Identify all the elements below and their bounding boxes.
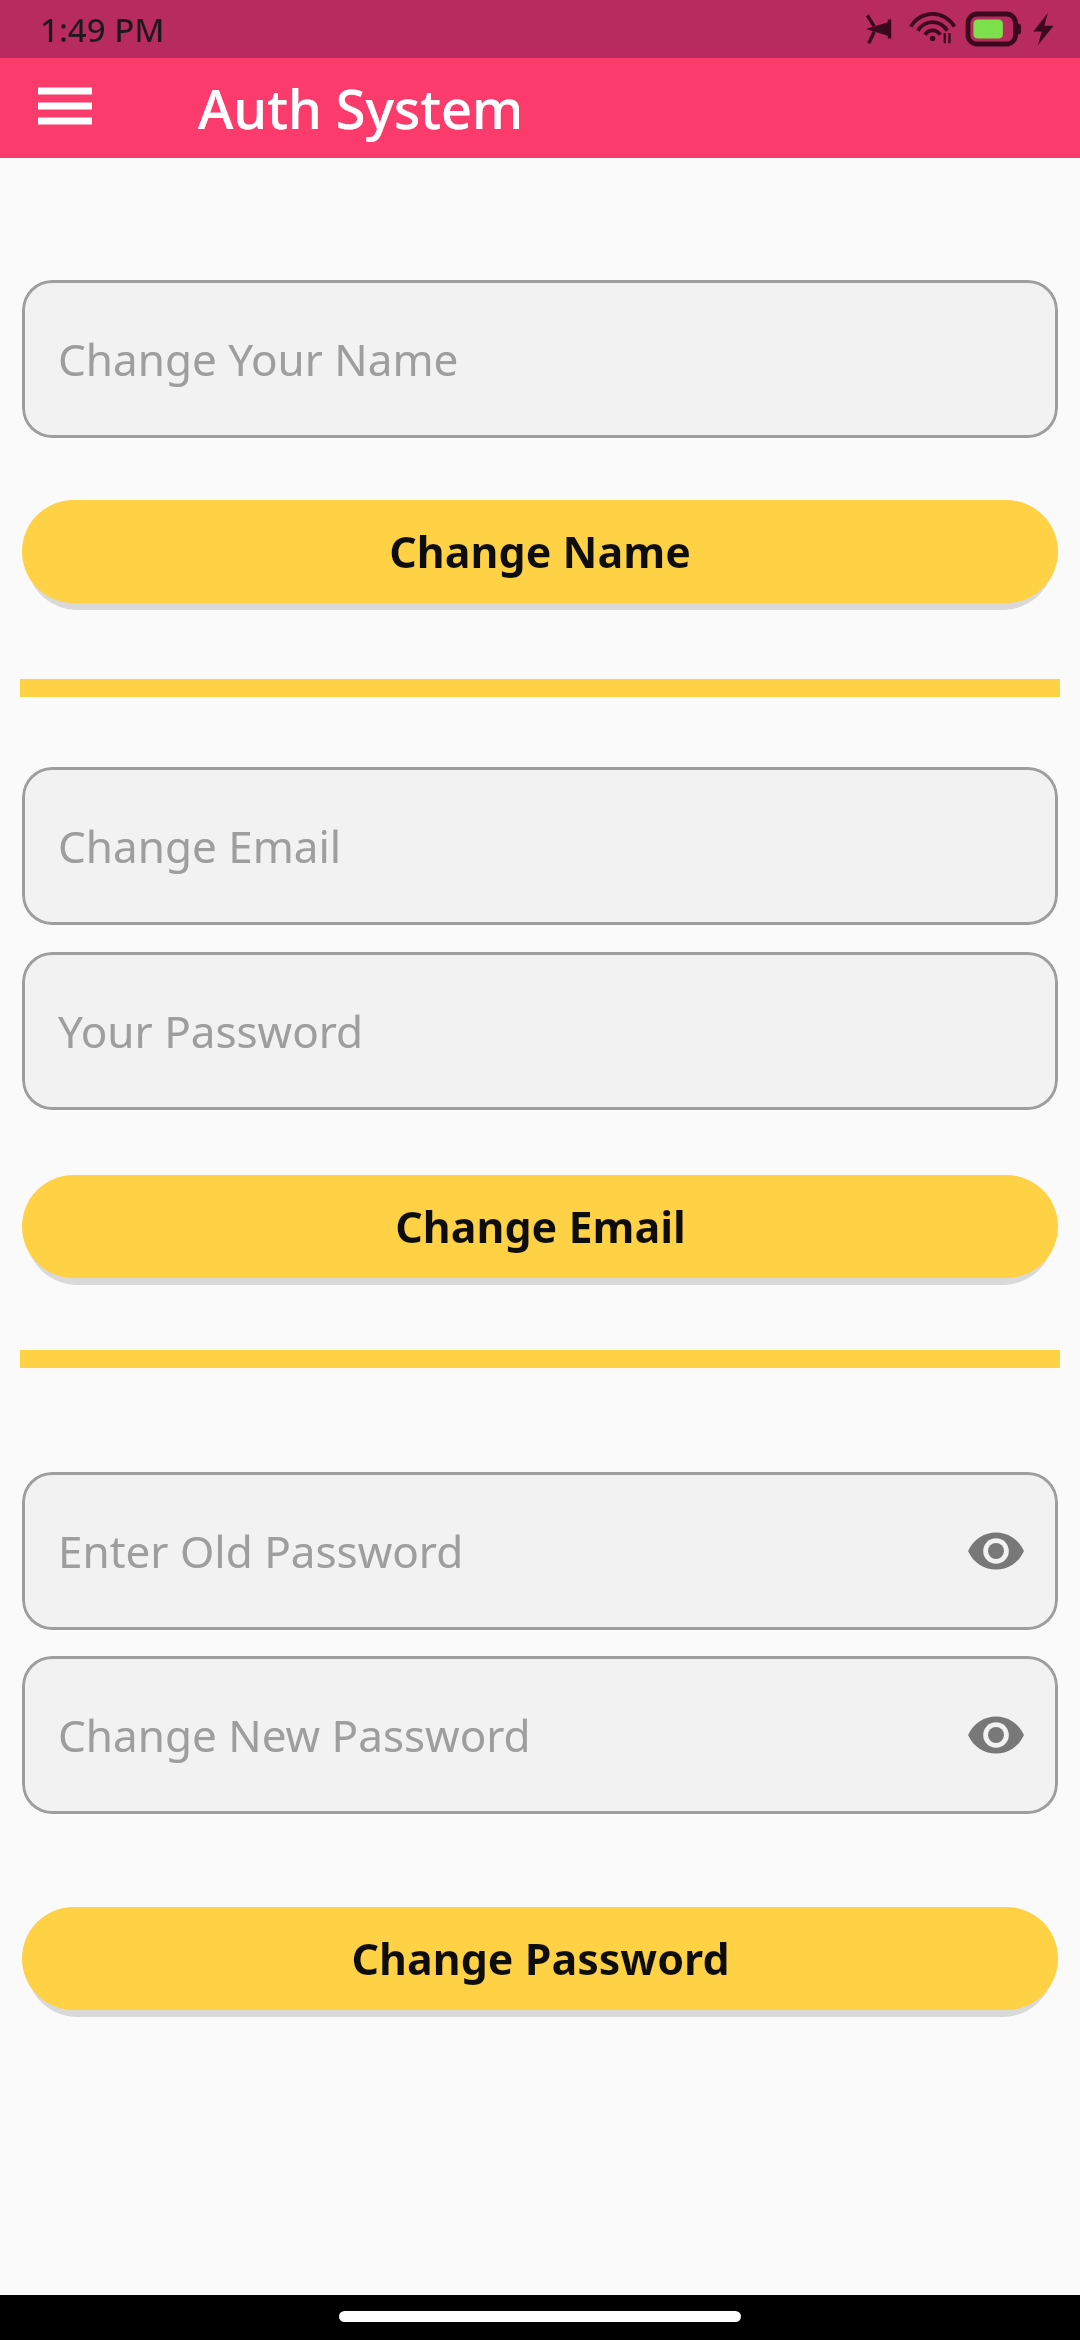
button[interactable]: Open navigation menu: [22, 65, 108, 151]
button[interactable]: Change Password: [22, 1907, 1058, 2010]
staticText: Change Email: [58, 816, 342, 876]
staticText: Change Name: [389, 522, 691, 581]
button[interactable]: Change Name: [22, 500, 1058, 603]
button[interactable]: Change New Password: [22, 1656, 1058, 1814]
button[interactable]: Show password: [954, 1693, 1038, 1777]
staticText: Enter Old Password: [58, 1521, 464, 1581]
button[interactable]: Your Password: [22, 952, 1058, 1110]
staticText: Your Password: [58, 1001, 364, 1061]
button[interactable]: Change Email: [22, 1175, 1058, 1278]
staticText: Change New Password: [58, 1705, 531, 1765]
staticText: Change Your Name: [58, 329, 459, 389]
staticText: Auth System: [198, 71, 524, 145]
staticText: 1:49 PM: [40, 7, 165, 52]
button[interactable]: Change Your Name: [22, 280, 1058, 438]
button[interactable]: Show password: [954, 1509, 1038, 1593]
staticText: Change Email: [395, 1197, 686, 1256]
staticText: Change Password: [351, 1929, 730, 1988]
button[interactable]: Enter Old Password: [22, 1472, 1058, 1630]
button[interactable]: Change Email: [22, 767, 1058, 925]
